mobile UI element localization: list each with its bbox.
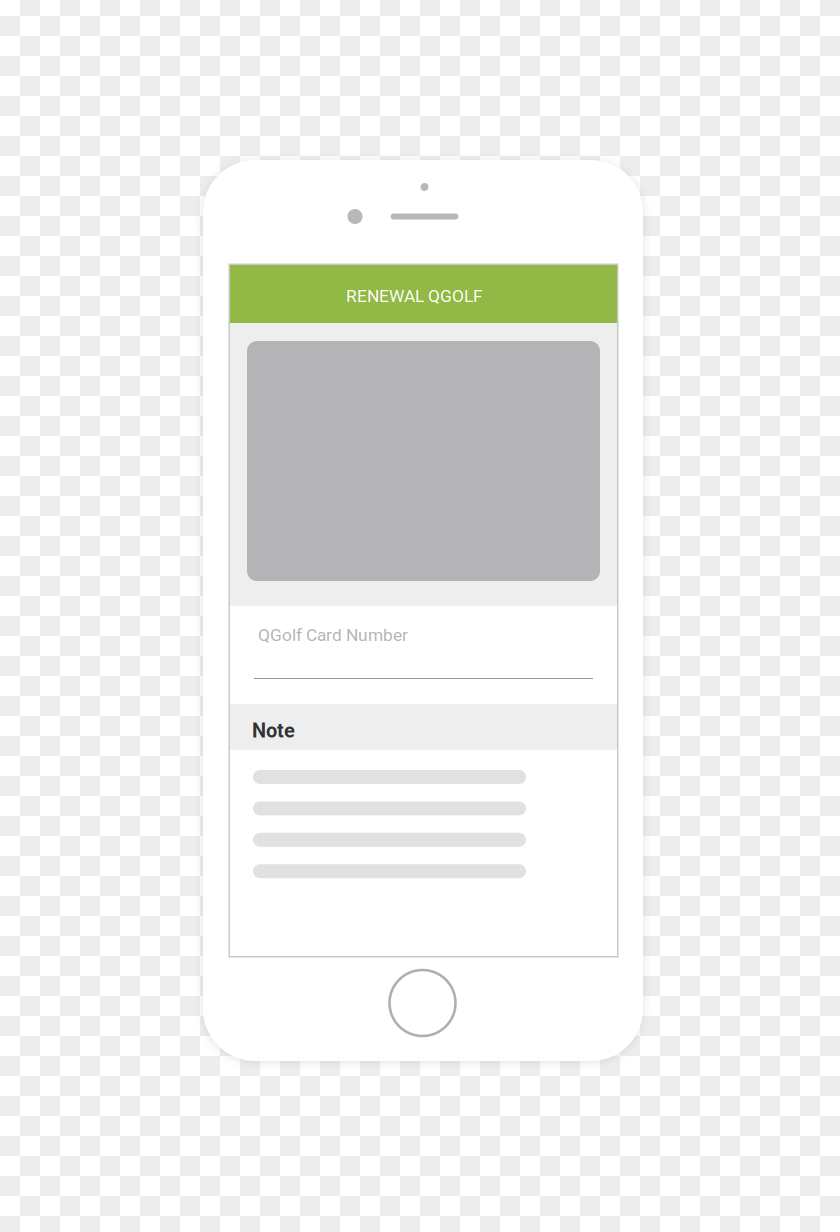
staticText: QGolf Card Number [258, 625, 408, 645]
staticText: Note [252, 719, 295, 742]
button[interactable]: Home [389, 970, 455, 1036]
button[interactable]: QGolf Card Number [230, 606, 617, 704]
staticText: RENEWAL QGOLF [346, 286, 483, 306]
button[interactable]: RENEWAL QGOLF [230, 265, 617, 323]
